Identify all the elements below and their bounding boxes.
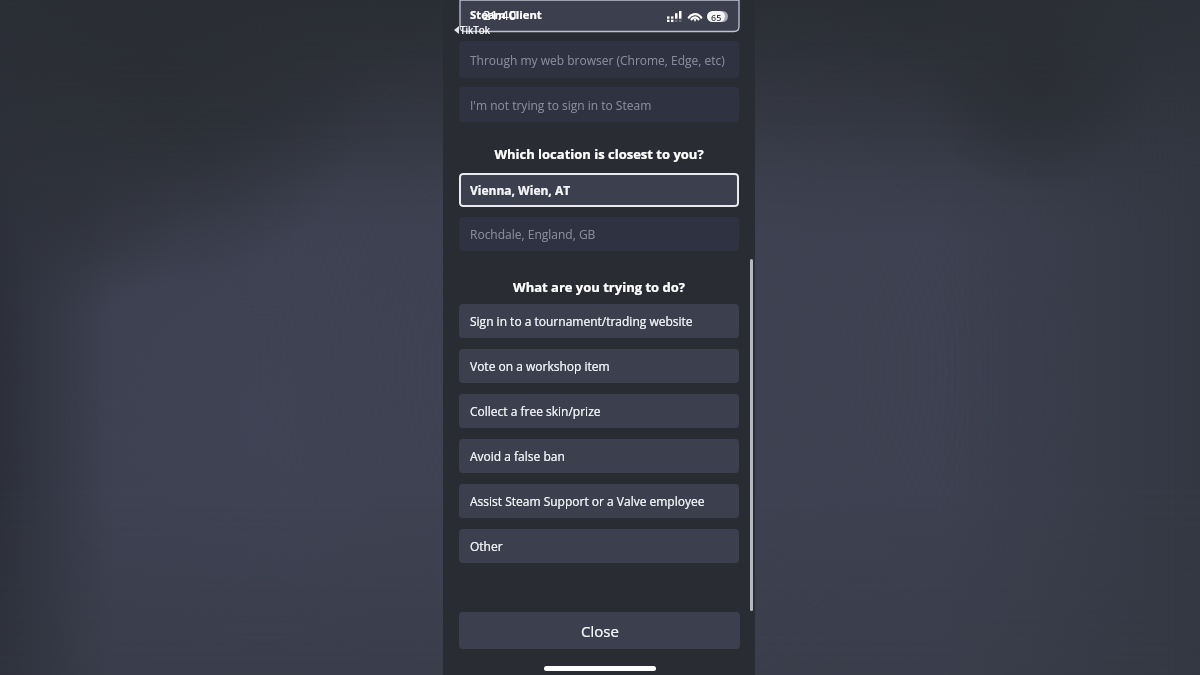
staticText: Which location is closest to you?	[459, 145, 739, 163]
button[interactable]: Rochdale, England, GB	[459, 217, 739, 251]
staticText: 21:40	[483, 6, 517, 24]
button[interactable]: Vote on a workshop item	[459, 349, 739, 383]
staticText: What are you trying to do?	[459, 278, 739, 296]
staticText: Close	[581, 621, 619, 641]
staticText: Sign in to a tournament/trading website	[470, 313, 693, 329]
button[interactable]: Collect a free skin/prize	[459, 394, 739, 428]
staticText: Other	[470, 538, 503, 554]
staticText: Assist Steam Support or a Valve employee	[470, 493, 705, 509]
staticText: TikTok	[460, 23, 491, 37]
button[interactable]: Avoid a false ban	[459, 439, 739, 473]
staticText: 65	[711, 11, 722, 22]
staticText: I'm not trying to sign in to Steam	[470, 97, 652, 113]
button[interactable]: Vienna, Wien, AT	[459, 173, 739, 207]
staticText: Avoid a false ban	[470, 448, 565, 464]
button[interactable]: Close	[459, 612, 740, 649]
button[interactable]: Through my web browser (Chrome, Edge, et…	[459, 41, 739, 78]
button[interactable]: Back to TikTok	[454, 23, 491, 37]
staticText: Vienna, Wien, AT	[470, 182, 571, 198]
button[interactable]: Assist Steam Support or a Valve employee	[459, 484, 739, 518]
staticText: Rochdale, England, GB	[470, 226, 596, 242]
button[interactable]: I'm not trying to sign in to Steam	[459, 87, 739, 122]
staticText: Through my web browser (Chrome, Edge, et…	[470, 52, 725, 68]
staticText: Collect a free skin/prize	[470, 403, 601, 419]
button[interactable]: Sign in to a tournament/trading website	[459, 304, 739, 338]
staticText: Vote on a workshop item	[470, 358, 610, 374]
staticText: Steam Client	[470, 7, 542, 22]
button[interactable]: Other	[459, 529, 739, 563]
